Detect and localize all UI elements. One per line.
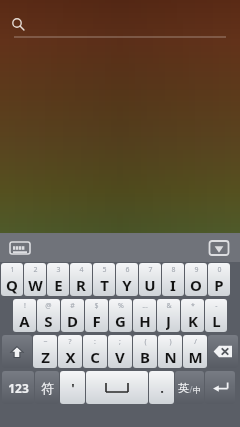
staticText: Q: [6, 275, 18, 294]
staticText: 4: [79, 265, 84, 275]
staticText: E: [54, 275, 63, 294]
staticText: @: [45, 301, 52, 311]
staticText: A: [19, 311, 30, 330]
staticText: Y: [122, 275, 132, 294]
button[interactable]: 5: [93, 263, 115, 296]
staticText: ~: [43, 337, 48, 347]
button[interactable]: 7: [139, 263, 161, 296]
staticText: .: [160, 379, 164, 397]
staticText: :: [94, 337, 96, 347]
staticText: 符: [41, 380, 54, 396]
staticText: ;: [119, 337, 121, 347]
button[interactable]: /: [183, 335, 207, 368]
staticText: /: [194, 337, 197, 347]
staticText: R: [76, 275, 86, 294]
staticText: *: [191, 301, 195, 311]
staticText: $: [94, 301, 99, 311]
staticText: W: [28, 275, 43, 294]
button[interactable]: 123: [2, 371, 34, 404]
button[interactable]: Switch keyboard: [8, 239, 32, 257]
button[interactable]: 0: [208, 263, 230, 296]
staticText: D: [67, 311, 78, 330]
staticText: N: [164, 347, 177, 366]
staticText: (: [144, 337, 147, 347]
button[interactable]: 2: [24, 263, 46, 296]
staticText: 3: [56, 265, 61, 275]
staticText: M: [188, 347, 203, 366]
staticText: 8: [171, 265, 176, 275]
staticText: V: [115, 347, 125, 366]
staticText: -: [215, 301, 218, 311]
button[interactable]: Hide keyboard: [208, 239, 230, 257]
staticText: B: [140, 347, 150, 366]
button[interactable]: @: [37, 299, 60, 332]
button[interactable]: 8: [162, 263, 184, 296]
staticText: !: [24, 301, 26, 311]
staticText: J: [166, 311, 171, 330]
staticText: ?: [68, 337, 72, 347]
button[interactable]: Backspace: [208, 335, 238, 368]
button[interactable]: 英: [175, 371, 204, 404]
button[interactable]: 3: [47, 263, 69, 296]
staticText: %: [118, 301, 124, 311]
staticText: #: [70, 301, 75, 311]
button[interactable]: ~: [33, 335, 57, 368]
other: Search: [0, 0, 240, 40]
staticText: I: [170, 275, 176, 294]
staticText: /: [189, 383, 193, 395]
staticText: 英: [178, 381, 189, 395]
staticText: 2: [33, 265, 38, 275]
staticText: 中: [193, 385, 201, 395]
button[interactable]: Enter: [205, 371, 235, 404]
staticText: 0: [217, 265, 222, 275]
button[interactable]: %: [109, 299, 132, 332]
button[interactable]: ?: [58, 335, 82, 368]
button[interactable]: ...: [133, 299, 156, 332]
staticText: 6: [125, 265, 130, 275]
staticText: 1: [10, 265, 15, 275]
button[interactable]: ): [158, 335, 182, 368]
staticText: P: [214, 275, 224, 294]
button[interactable]: &: [157, 299, 180, 332]
button[interactable]: ': [60, 371, 85, 404]
button[interactable]: $: [85, 299, 108, 332]
staticText: ': [71, 379, 75, 397]
button[interactable]: (: [133, 335, 157, 368]
button[interactable]: 9: [185, 263, 207, 296]
button[interactable]: #: [61, 299, 84, 332]
staticText: O: [190, 275, 202, 294]
staticText: G: [115, 311, 126, 330]
button[interactable]: :: [83, 335, 107, 368]
button[interactable]: -: [205, 299, 227, 332]
staticText: K: [188, 311, 198, 330]
staticText: C: [90, 347, 100, 366]
staticText: F: [92, 311, 101, 330]
button[interactable]: ;: [108, 335, 132, 368]
button[interactable]: 4: [70, 263, 92, 296]
staticText: &: [166, 301, 172, 311]
staticText: L: [212, 311, 221, 330]
staticText: 7: [148, 265, 153, 275]
staticText: ): [169, 337, 172, 347]
staticText: X: [65, 347, 76, 366]
button[interactable]: Search: [0, 0, 240, 40]
button[interactable]: .: [149, 371, 174, 404]
staticText: Z: [41, 347, 50, 366]
button[interactable]: 1: [1, 263, 23, 296]
staticText: U: [144, 275, 156, 294]
staticText: ...: [142, 301, 148, 311]
staticText: H: [139, 311, 151, 330]
button[interactable]: *: [181, 299, 204, 332]
button[interactable]: Space: [86, 371, 148, 404]
staticText: 5: [102, 265, 107, 275]
staticText: 9: [194, 265, 199, 275]
button[interactable]: Shift: [2, 335, 32, 368]
staticText: S: [44, 311, 53, 330]
staticText: T: [100, 275, 109, 294]
staticText: 123: [8, 380, 29, 396]
button[interactable]: !: [13, 299, 36, 332]
button[interactable]: 符: [35, 371, 59, 404]
button[interactable]: 6: [116, 263, 138, 296]
